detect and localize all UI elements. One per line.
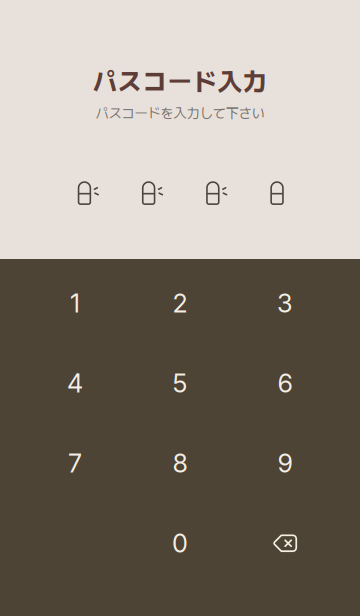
button[interactable]: 1 (22, 263, 127, 343)
staticText: 2 (172, 288, 187, 319)
button[interactable]: 6 (232, 343, 337, 423)
staticText: パスコードを入力して下さい (95, 103, 264, 122)
staticText: 0 (172, 528, 188, 559)
staticText: 6 (277, 368, 292, 399)
button[interactable]: 2 (127, 263, 232, 343)
button[interactable]: 3 (232, 263, 337, 343)
staticText: 3 (277, 288, 293, 319)
staticText: 1 (70, 288, 80, 319)
button[interactable]: 8 (127, 423, 232, 503)
staticText: 4 (67, 368, 83, 399)
staticText: 9 (277, 448, 292, 479)
button[interactable]: 5 (127, 343, 232, 423)
button[interactable]: 7 (22, 423, 127, 503)
button[interactable]: 4 (22, 343, 127, 423)
button[interactable]: 0 (127, 503, 232, 583)
staticText: 7 (68, 448, 82, 479)
button[interactable]: Delete (232, 503, 337, 583)
button[interactable]: 9 (232, 423, 337, 503)
staticText: パスコード入力 (92, 62, 267, 98)
staticText: 8 (172, 448, 187, 479)
staticText: 5 (172, 368, 187, 399)
